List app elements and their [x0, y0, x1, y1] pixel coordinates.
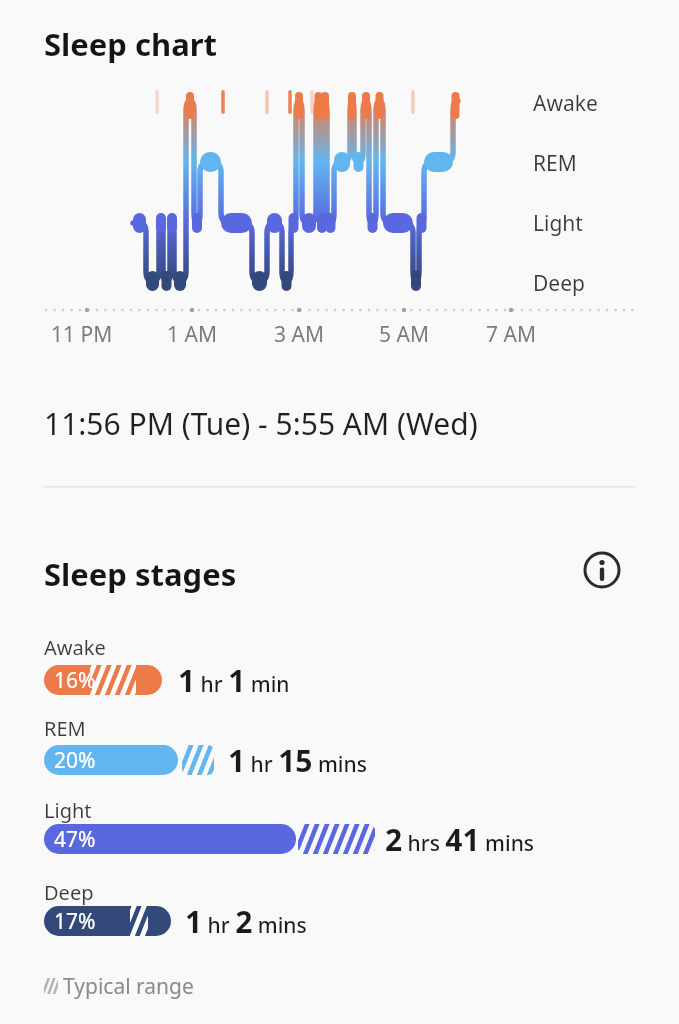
staticText: Sleep chart: [44, 23, 218, 65]
staticText: 1 hr 2 mins: [185, 901, 307, 942]
staticText: 20%: [54, 746, 96, 775]
staticText: REM: [533, 149, 577, 178]
staticText: Sleep stages: [44, 553, 237, 595]
button[interactable]: [582, 550, 622, 590]
staticText: 2 hrs 41 mins: [385, 819, 535, 860]
staticText: 7 AM: [486, 320, 536, 349]
staticText: Awake: [533, 89, 598, 118]
staticText: Awake: [44, 634, 106, 661]
staticText: 1 AM: [167, 320, 217, 349]
staticText: 11 PM: [51, 320, 113, 349]
staticText: REM: [44, 715, 86, 742]
staticText: Light: [44, 797, 92, 824]
staticText: Deep: [533, 269, 585, 298]
staticText: Light: [533, 209, 583, 238]
staticText: 11:56 PM (Tue) - 5:55 AM (Wed): [44, 403, 478, 443]
staticText: 3 AM: [274, 320, 324, 349]
staticText: 1 hr 15 mins: [228, 740, 367, 781]
staticText: 17%: [54, 907, 96, 936]
staticText: 16%: [54, 666, 96, 695]
staticText: 1 hr 1 min: [178, 660, 290, 701]
staticText: Typical range: [63, 972, 194, 1001]
staticText: Deep: [44, 879, 94, 906]
staticText: 47%: [54, 825, 96, 854]
staticText: 5 AM: [379, 320, 429, 349]
